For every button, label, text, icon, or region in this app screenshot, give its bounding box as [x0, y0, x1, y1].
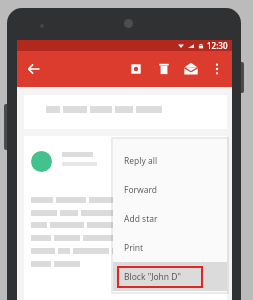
button[interactable] — [24, 95, 227, 129]
button[interactable]: More options — [206, 58, 228, 80]
staticText: 12:30 — [207, 40, 228, 51]
staticText: Add star — [124, 213, 158, 225]
button[interactable]: Mark as unread — [180, 58, 202, 80]
staticText: Forward — [124, 184, 158, 196]
staticText: Reply all — [124, 155, 158, 167]
button[interactable]: Forward — [113, 175, 227, 204]
button[interactable]: Reply all — [113, 146, 227, 175]
staticText: Print — [124, 242, 144, 254]
button[interactable]: Print — [113, 233, 227, 262]
button[interactable]: Add star — [113, 204, 227, 233]
button[interactable]: Archive — [125, 58, 147, 80]
staticText: Block "John D" — [124, 271, 182, 283]
button[interactable]: Block "John D" — [113, 262, 227, 291]
button[interactable]: Delete — [153, 58, 175, 80]
button[interactable]: Back — [23, 58, 45, 80]
